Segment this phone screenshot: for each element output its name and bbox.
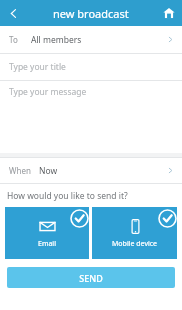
- staticText: When: [9, 165, 31, 176]
- staticText: Type your title: [9, 61, 66, 73]
- button[interactable]: To: [0, 26, 182, 53]
- button[interactable]: SEND: [7, 267, 175, 288]
- button[interactable]: Mobile device: [92, 207, 177, 259]
- button[interactable]: Type your message: [0, 81, 182, 153]
- button[interactable]: Email: [5, 207, 89, 259]
- button[interactable]: Home: [156, 0, 182, 26]
- staticText: All members: [31, 34, 82, 46]
- button[interactable]: Back: [0, 0, 26, 26]
- button[interactable]: When: [0, 158, 182, 183]
- button[interactable]: Type your title: [0, 54, 182, 80]
- staticText: To: [9, 34, 18, 45]
- staticText: SEND: [79, 272, 103, 284]
- staticText: new broadcast: [53, 6, 129, 21]
- staticText: How would you like to send it?: [7, 190, 128, 202]
- staticText: Email: [38, 239, 56, 249]
- staticText: Mobile device: [112, 239, 158, 249]
- staticText: Type your message: [9, 86, 87, 98]
- staticText: Now: [39, 165, 58, 177]
